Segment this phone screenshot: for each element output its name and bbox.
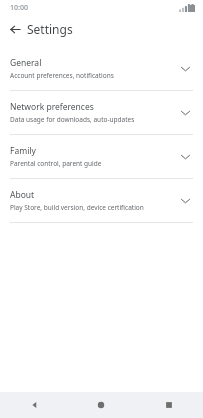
button[interactable]: Back xyxy=(0,392,67,418)
staticText: General xyxy=(10,57,42,69)
button[interactable]: Home xyxy=(67,392,135,418)
button[interactable]: Network preferences xyxy=(0,91,203,134)
staticText: Play Store, build version, device certif… xyxy=(10,203,144,212)
staticText: 10:00 xyxy=(10,3,28,13)
button[interactable]: Recent apps xyxy=(135,392,203,418)
button[interactable]: General xyxy=(0,47,203,90)
staticText: Settings xyxy=(27,21,73,37)
staticText: About xyxy=(10,189,35,201)
staticText: Account preferences, notifications xyxy=(10,71,114,80)
button[interactable]: About xyxy=(0,179,203,222)
button[interactable]: Back xyxy=(6,20,24,38)
staticText: Parental control, parent guide xyxy=(10,159,102,168)
button[interactable]: Family xyxy=(0,135,203,178)
staticText: Family xyxy=(10,145,36,157)
staticText: Data usage for downloads, auto-updates xyxy=(10,115,135,124)
staticText: Network preferences xyxy=(10,101,94,113)
